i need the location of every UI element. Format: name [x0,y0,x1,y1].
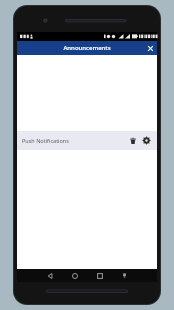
button[interactable]: Home [68,269,81,282]
button[interactable]: Close [143,41,157,55]
button[interactable]: Push Notifications [17,131,157,150]
button[interactable]: Recent apps [93,269,106,282]
button[interactable]: Back [43,269,56,282]
button[interactable]: Settings [140,134,153,147]
staticText: Push Notifications [22,137,126,144]
button[interactable]: Keyboard [118,269,131,282]
button[interactable]: Delete [126,134,139,147]
staticText: Announcements [63,44,111,52]
